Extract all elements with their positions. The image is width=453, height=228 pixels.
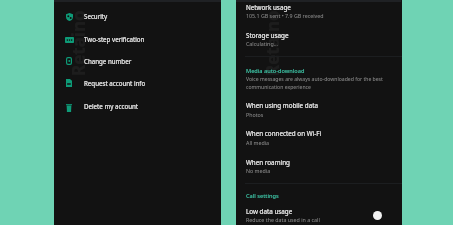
button[interactable]: When roaming [236,156,402,173]
button[interactable]: Change number [54,50,221,72]
staticText: Media auto-download [246,67,305,75]
staticText: When using mobile data [246,101,318,110]
staticText: communication experience [246,84,311,91]
button[interactable]: Security [54,5,221,27]
staticText: Request account info [84,79,146,87]
button[interactable]: Request account info [54,72,221,94]
staticText: Reduce the data used in a call [246,216,320,223]
button[interactable]: Two-step verification [54,28,221,50]
staticText: Retaino [67,10,90,76]
button[interactable]: When connected on Wi-Fi [236,127,402,145]
staticText: Voice messages are always auto-downloade… [246,76,383,83]
staticText: Calculating… [246,40,278,47]
button[interactable]: Low data usage [236,205,402,222]
staticText: Security [84,12,108,20]
staticText: Photos [246,111,264,118]
staticText: Call settings [246,192,279,200]
staticText: All media [246,139,270,146]
staticText: When connected on Wi-Fi [246,129,322,138]
staticText: Retaino [261,10,284,76]
button[interactable]: Low data usage toggle [373,211,382,220]
staticText: Storage usage [246,31,289,40]
staticText: When roaming [246,158,290,167]
staticText: No media [246,167,271,174]
staticText: Network usage [246,3,291,12]
button[interactable]: When using mobile data [236,99,402,116]
staticText: Change number [84,57,132,65]
button[interactable]: Network usage [236,1,402,18]
staticText: Two-step verification [84,35,145,43]
staticText: Low data usage [246,207,293,216]
staticText: Delete my account [84,102,139,110]
button[interactable]: Delete my account [54,95,221,117]
staticText: 105.1 GB sent • 7.9 GB received [246,12,324,19]
button[interactable]: Storage usage [236,29,402,46]
